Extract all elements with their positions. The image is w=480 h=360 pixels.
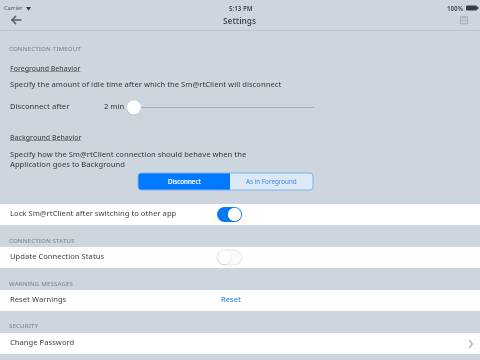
button[interactable]: Change Password (0, 333, 480, 354)
staticText: Settings (223, 15, 257, 26)
staticText: Disconnect (168, 177, 201, 186)
button[interactable]: Disconnect (138, 173, 230, 190)
staticText: Update Connection Status (10, 251, 105, 261)
staticText: 100% (447, 4, 464, 12)
staticText: Foreground Behavior (10, 64, 81, 73)
staticText: Reset (221, 294, 241, 304)
button[interactable]: As in Foreground (230, 173, 313, 190)
staticText: CONNECTION STATUS (9, 236, 75, 244)
button[interactable]: Lock Sm@rtClient after switching to othe… (0, 204, 480, 225)
staticText: Specify how the Sm@rtClient connection s… (10, 149, 247, 169)
staticText: Background Behavior (10, 133, 82, 142)
staticText: As in Foreground (246, 177, 297, 186)
button[interactable]: Update Connection Status (0, 247, 480, 268)
staticText: Lock Sm@rtClient after switching to othe… (10, 208, 177, 218)
staticText: Disconnect after (10, 101, 70, 111)
staticText: 2 min (104, 101, 125, 111)
staticText: Carrier (4, 4, 23, 12)
staticText: WARNING MESSAGES (9, 279, 74, 287)
button[interactable] (217, 250, 242, 265)
button[interactable]: Save (455, 12, 473, 28)
button[interactable]: Disconnect after slider (126, 100, 314, 115)
staticText: Change Password (10, 337, 75, 347)
staticText: Reset Warnings (10, 294, 67, 304)
staticText: CONNECTION TIMEOUT (9, 44, 81, 52)
staticText: SECURITY (9, 321, 39, 329)
staticText: 5:13 PM (229, 4, 253, 12)
button[interactable]: Back (5, 12, 27, 28)
staticText: Specify the amount of idle time after wh… (10, 79, 282, 89)
button[interactable]: Reset Warnings (0, 290, 480, 311)
button[interactable] (217, 207, 242, 222)
